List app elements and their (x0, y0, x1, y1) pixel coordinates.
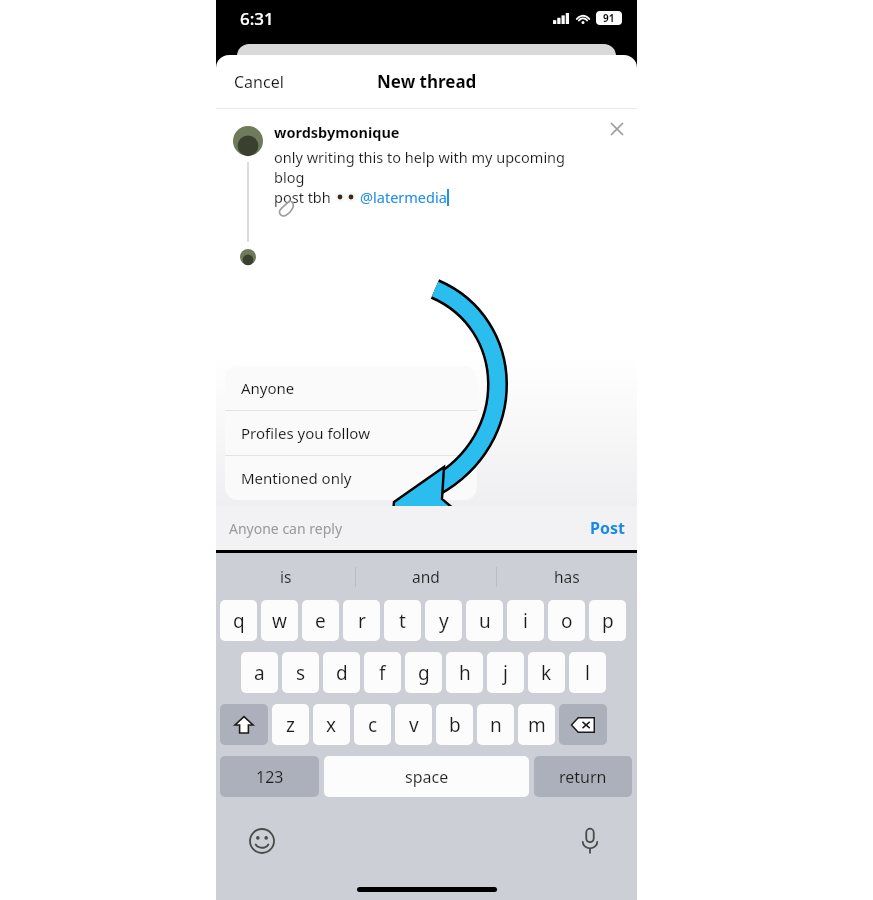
staticText: b (449, 712, 461, 738)
button[interactable]: d (323, 652, 360, 693)
button[interactable]: q (220, 600, 257, 641)
button[interactable]: Shift (220, 704, 268, 745)
button[interactable]: return (534, 756, 632, 797)
button[interactable]: and (356, 553, 496, 600)
staticText: k (541, 660, 552, 686)
button[interactable]: k (528, 652, 565, 693)
button[interactable]: e (302, 600, 339, 641)
staticText: m (528, 712, 546, 738)
button[interactable]: t (384, 600, 421, 641)
staticText: w (272, 608, 287, 634)
staticText: is (280, 566, 292, 587)
staticText: a (254, 660, 265, 686)
staticText: d (336, 660, 348, 686)
button[interactable]: is (216, 553, 355, 600)
button[interactable]: z (272, 704, 309, 745)
button[interactable]: h (446, 652, 483, 693)
staticText: 6:31 (240, 7, 274, 30)
button[interactable]: j (487, 652, 524, 693)
button[interactable]: Delete (559, 704, 607, 745)
button[interactable]: f (364, 652, 401, 693)
button[interactable]: space (324, 756, 529, 797)
button[interactable]: c (354, 704, 391, 745)
button[interactable]: l (569, 652, 606, 693)
button[interactable]: y (425, 600, 462, 641)
button[interactable]: Emoji (249, 828, 275, 854)
staticText: wordsbymonique (274, 122, 400, 142)
button[interactable]: i (507, 600, 544, 641)
button[interactable]: m (518, 704, 555, 745)
staticText: h (459, 660, 471, 686)
staticText: o (561, 608, 573, 634)
staticText: x (326, 712, 337, 738)
button[interactable]: Dictation (579, 827, 601, 855)
staticText: Anyone (241, 378, 295, 398)
button[interactable]: Cancel (216, 61, 302, 103)
staticText: e (315, 608, 326, 634)
button[interactable]: o (548, 600, 585, 641)
staticText: i (523, 608, 528, 634)
button[interactable]: has (497, 553, 637, 600)
staticText: post tbh (274, 187, 335, 207)
button[interactable]: w (261, 600, 298, 641)
button[interactable]: a (241, 652, 278, 693)
staticText: y (439, 608, 449, 634)
staticText: s (296, 660, 306, 686)
button[interactable]: Post (578, 511, 637, 545)
button[interactable]: b (436, 704, 473, 745)
staticText: z (286, 712, 295, 738)
staticText: and (412, 566, 440, 587)
staticText: r (358, 608, 366, 634)
staticText: 123 (256, 766, 284, 788)
staticText: Cancel (234, 71, 284, 93)
button[interactable]: n (477, 704, 514, 745)
staticText: only writing this to help with my upcomi… (274, 147, 574, 187)
button[interactable]: Mentioned only (225, 456, 477, 500)
staticText: New thread (377, 70, 477, 93)
button[interactable]: Anyone (225, 366, 477, 410)
staticText: Post (590, 517, 625, 539)
button[interactable]: r (343, 600, 380, 641)
staticText: t (399, 608, 406, 634)
staticText: p (602, 608, 614, 634)
staticText: has (554, 566, 580, 587)
button[interactable]: Close (606, 118, 628, 140)
button[interactable]: s (282, 652, 319, 693)
staticText: g (418, 660, 430, 686)
button[interactable]: 123 (220, 756, 319, 797)
staticText: Mentioned only (241, 468, 352, 488)
staticText: space (405, 766, 449, 788)
staticText: c (368, 712, 378, 738)
staticText: Profiles you follow (241, 423, 370, 443)
staticText: Anyone can reply (229, 519, 343, 538)
staticText: return (559, 766, 607, 788)
staticText: v (409, 712, 419, 738)
button[interactable]: g (405, 652, 442, 693)
button[interactable]: Attach (277, 198, 297, 218)
staticText: u (479, 608, 491, 634)
button[interactable]: x (313, 704, 350, 745)
button[interactable]: v (395, 704, 432, 745)
staticText: 91 (603, 11, 615, 25)
button[interactable]: Profiles you follow (225, 411, 477, 455)
staticText: l (585, 660, 590, 686)
staticText: f (379, 660, 386, 686)
staticText: n (490, 712, 502, 738)
button[interactable]: p (589, 600, 626, 641)
button[interactable]: u (466, 600, 503, 641)
staticText: @latermedia (360, 187, 447, 207)
staticText: q (233, 608, 245, 634)
staticText: j (503, 660, 508, 686)
